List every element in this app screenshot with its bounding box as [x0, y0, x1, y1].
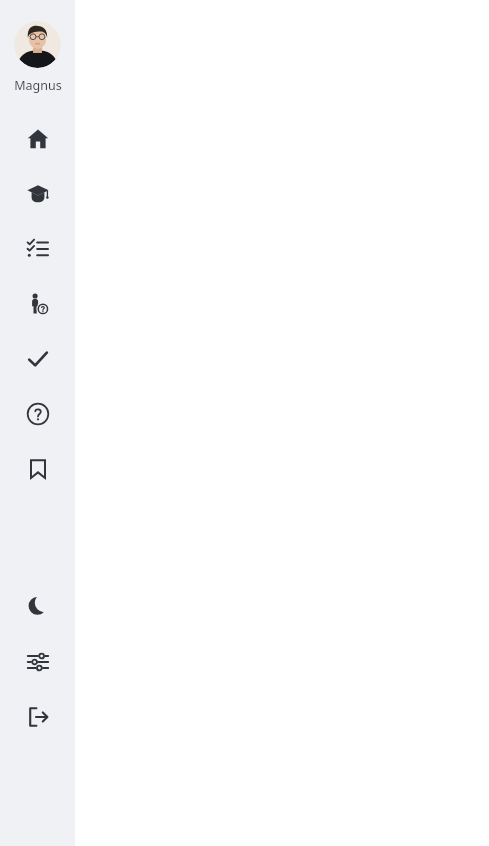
button[interactable]: Bookmarks: [0, 441, 75, 496]
button[interactable]: Help desk: [0, 276, 75, 331]
button[interactable]: Log out: [0, 689, 75, 744]
button[interactable]: Dark mode: [0, 579, 75, 634]
button[interactable]: Settings: [0, 634, 75, 689]
button[interactable]: Tasks: [0, 221, 75, 276]
button[interactable]: Magnus: [0, 75, 75, 95]
button[interactable]: Completed: [0, 331, 75, 386]
button[interactable]: Support: [0, 386, 75, 441]
button[interactable]: Home: [0, 111, 75, 166]
button[interactable]: Profile photo: [14, 21, 61, 68]
button[interactable]: Courses: [0, 166, 75, 221]
staticText: Magnus: [14, 77, 62, 94]
